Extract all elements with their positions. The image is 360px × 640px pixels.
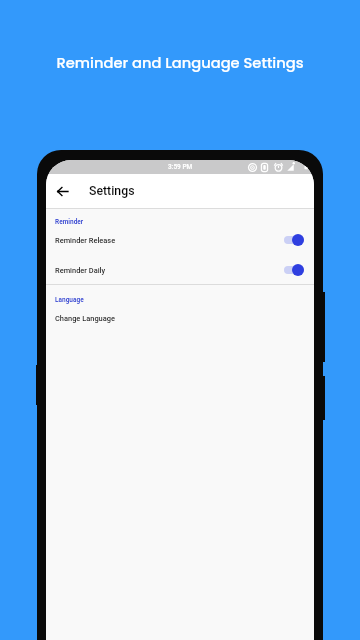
button[interactable]: Reminder Daily [46, 258, 314, 282]
button[interactable]: Change Language [46, 306, 314, 330]
staticText: Settings [89, 184, 135, 198]
staticText: Reminder and Language Settings [0, 53, 360, 74]
staticText: Reminder Release [55, 236, 116, 245]
button[interactable]: Back [50, 179, 74, 203]
button[interactable]: Reminder Release [46, 228, 314, 252]
staticText: 3:59 PM [168, 163, 193, 171]
staticText: Language [55, 296, 84, 304]
staticText: Reminder Daily [55, 266, 106, 275]
staticText: Reminder [55, 218, 84, 226]
staticText: Change Language [55, 314, 115, 323]
